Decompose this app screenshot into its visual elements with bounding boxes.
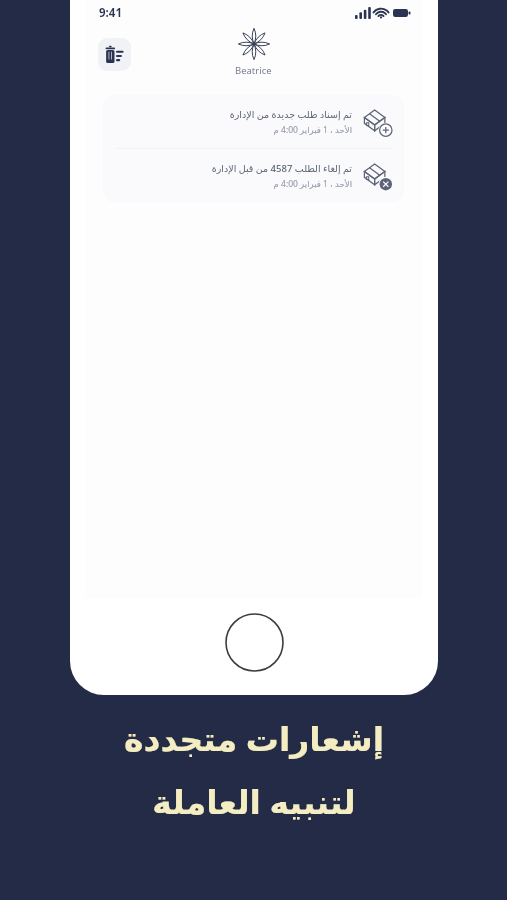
button[interactable]: Home	[225, 613, 284, 672]
button[interactable]: تم إسناد طلب جديدة من الإدارة	[103, 95, 404, 148]
staticText: تم إسناد طلب جديدة من الإدارة	[229, 108, 352, 121]
button[interactable]: تم إلغاء الطلب 4587 من قبل الإدارة	[103, 149, 404, 202]
staticText: 9:41	[99, 5, 122, 21]
staticText: Beatrice	[235, 64, 272, 77]
staticText: الأحد ، 1 فبراير 4:00 م	[273, 178, 352, 190]
staticText: تم إلغاء الطلب 4587 من قبل الإدارة	[211, 162, 352, 175]
staticText: لتنبيه العاملة	[152, 779, 356, 824]
staticText: إشعارات متجددة	[124, 716, 384, 761]
button[interactable]: Clear all notifications	[98, 38, 131, 71]
staticText: الأحد ، 1 فبراير 4:00 م	[273, 124, 352, 136]
